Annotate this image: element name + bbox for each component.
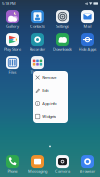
button[interactable]: Camera (50, 155, 75, 174)
button[interactable]: Messaging (25, 155, 50, 174)
button[interactable]: Browser (75, 155, 100, 174)
staticText: Settings (56, 24, 69, 29)
staticText: Mail (83, 24, 91, 29)
staticText: Contacts (30, 24, 45, 29)
staticText: Widgets (42, 114, 56, 119)
staticText: Hide Apps (78, 47, 96, 52)
button[interactable]: Gallery (0, 10, 25, 29)
button[interactable]: Hide Apps (75, 33, 100, 52)
staticText: Files (8, 70, 16, 75)
staticText: i (37, 101, 38, 106)
button[interactable]: Downloads (50, 33, 75, 52)
staticText: Downloads (53, 47, 72, 52)
button[interactable]: Themes (25, 56, 50, 75)
button[interactable]: Mail (75, 10, 100, 29)
button[interactable]: Phone (0, 155, 25, 174)
staticText: Edit (42, 88, 48, 93)
button[interactable]: Widgets (33, 110, 68, 123)
staticText: Browser (79, 169, 95, 174)
staticText: Themes (30, 70, 44, 75)
button[interactable]: Files (0, 56, 25, 75)
button[interactable]: Settings (50, 10, 75, 29)
staticText: Camera (55, 169, 70, 174)
staticText: 5:18 PM (2, 1, 16, 6)
button[interactable]: Contacts (25, 10, 50, 29)
staticText: Gallery (6, 24, 19, 29)
button[interactable]: Play Store (0, 33, 25, 52)
button[interactable]: i (33, 97, 68, 110)
button[interactable]: Remove (33, 71, 68, 84)
staticText: Remove (42, 75, 56, 80)
staticText: Play Store (4, 47, 21, 52)
staticText: Phone (7, 169, 17, 174)
button[interactable]: Recorder (25, 33, 50, 52)
staticText: Recorder (29, 47, 45, 52)
staticText: App info (42, 101, 56, 106)
button[interactable]: Edit (33, 84, 68, 97)
staticText: Messaging (28, 169, 47, 174)
